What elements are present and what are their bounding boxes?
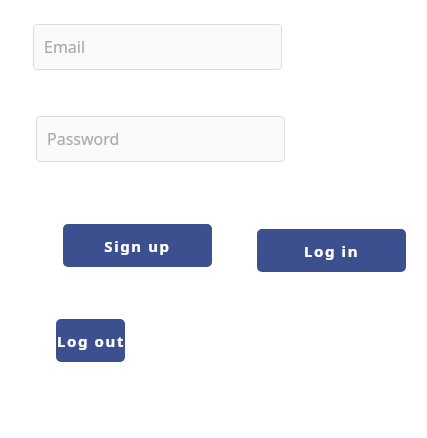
staticText: Log in [304,241,359,261]
staticText: Password [47,128,120,150]
staticText: Log out [57,331,125,351]
staticText: Email [44,36,86,58]
button[interactable]: Log out [56,319,125,362]
staticText: Sign up [104,236,171,256]
button[interactable]: Password [36,116,285,162]
button[interactable]: Sign up [63,224,212,267]
button[interactable]: Log in [257,229,406,272]
button[interactable]: Email [33,24,282,70]
